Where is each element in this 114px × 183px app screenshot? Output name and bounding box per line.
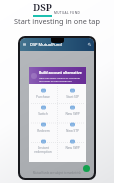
button[interactable]: Start SIP xyxy=(58,88,86,99)
staticText: Start investing in one tap xyxy=(0,16,114,26)
staticText: New SWP xyxy=(65,146,80,150)
staticText: DSP MutualFund xyxy=(30,42,62,47)
staticText: DSP xyxy=(33,1,52,14)
other: Menu xyxy=(23,43,26,46)
button[interactable]: New STP xyxy=(58,122,86,133)
button[interactable]: Redeem xyxy=(29,122,57,133)
button[interactable]: Switch xyxy=(29,105,57,116)
staticText: Start SIP xyxy=(66,95,79,99)
button[interactable]: Build account alternative xyxy=(29,67,86,84)
staticText: MUTUAL FUND xyxy=(54,11,81,15)
staticText: Mutual funds are subject to market risk xyxy=(33,171,81,175)
staticText: Switch xyxy=(38,112,48,116)
staticText: New SWP xyxy=(65,112,80,116)
button[interactable]: New SWP xyxy=(58,139,86,150)
staticText: redemption xyxy=(34,150,52,154)
button[interactable]: Purchase xyxy=(29,88,57,99)
staticText: Take the seven minute to complete xyxy=(39,76,80,79)
button[interactable]: Instant xyxy=(29,139,57,154)
button[interactable]: New SWP xyxy=(58,105,86,116)
staticText: Purchase xyxy=(36,95,50,99)
staticText: New STP xyxy=(66,129,79,133)
staticText: and grow all the investment xyxy=(39,79,72,82)
staticText: Redeem xyxy=(37,129,50,133)
other: Search xyxy=(88,43,91,46)
staticText: Instant xyxy=(38,146,49,150)
button[interactable]: Add xyxy=(83,165,90,172)
staticText: Build account alternative xyxy=(39,70,82,75)
